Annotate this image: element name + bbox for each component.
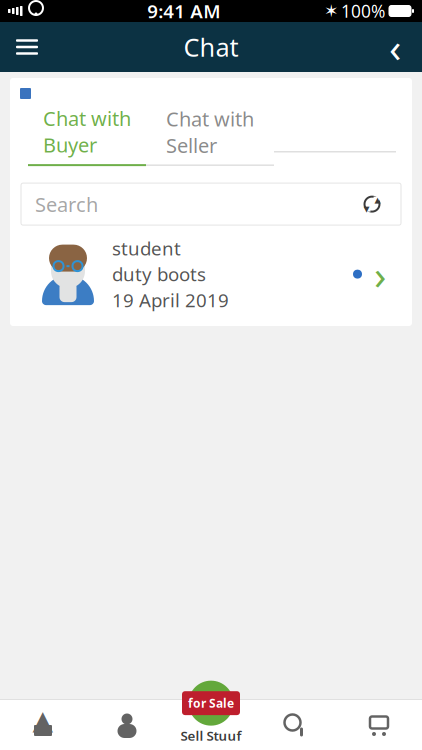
staticText: Chat with Seller bbox=[166, 105, 254, 159]
staticText: 100% bbox=[341, 0, 385, 22]
button[interactable]: Cart bbox=[337, 700, 421, 750]
staticText: student bbox=[112, 236, 181, 261]
staticText: Sell Stuuf bbox=[180, 727, 241, 744]
staticText: Chat with Buyer bbox=[43, 105, 131, 158]
button[interactable]: Home bbox=[1, 700, 85, 750]
button[interactable]: Menu bbox=[0, 22, 54, 72]
staticText: for Sale bbox=[188, 695, 234, 711]
staticText: Search bbox=[35, 191, 98, 217]
button[interactable]: Profile bbox=[85, 700, 169, 750]
staticText: 9:41 AM bbox=[147, 0, 220, 23]
staticText: 19 April 2019 bbox=[112, 287, 229, 312]
staticText: ✶ bbox=[324, 1, 339, 21]
button[interactable]: Search bbox=[253, 700, 337, 750]
staticText: ▾ bbox=[363, 202, 369, 215]
button[interactable]: Refresh bbox=[357, 189, 387, 219]
staticText: ‹ bbox=[389, 20, 401, 73]
button[interactable]: Back bbox=[368, 22, 422, 72]
staticText: › bbox=[374, 248, 386, 301]
staticText: ▲ bbox=[32, 705, 53, 735]
staticText: ▴ bbox=[374, 193, 380, 206]
staticText: duty boots bbox=[112, 262, 206, 286]
button[interactable]: for Sale bbox=[180, 681, 241, 750]
button[interactable]: Chat with Seller bbox=[146, 105, 274, 166]
button[interactable]: student bbox=[10, 235, 412, 313]
button[interactable]: Chat with Buyer bbox=[28, 105, 146, 166]
staticText: Chat bbox=[183, 30, 238, 64]
